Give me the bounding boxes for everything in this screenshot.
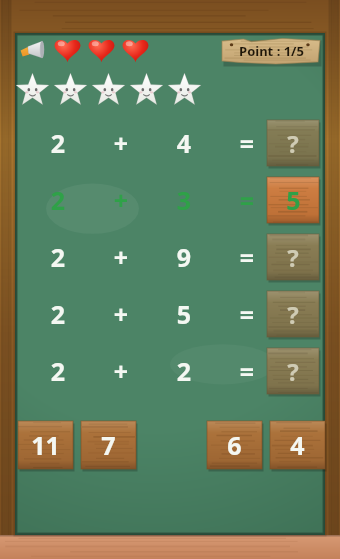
staticText: 2 <box>172 354 196 388</box>
button[interactable]: Sound <box>19 39 45 61</box>
staticText: = <box>235 183 259 217</box>
staticText: ? <box>287 298 299 331</box>
staticText: 2 <box>46 354 70 388</box>
button[interactable]: Choose 4 <box>270 421 325 469</box>
staticText: 7 <box>101 428 116 462</box>
staticText: 4 <box>172 126 196 160</box>
staticText: = <box>235 354 259 388</box>
staticText: + <box>109 354 133 388</box>
button[interactable]: Choose 7 <box>81 421 136 469</box>
button[interactable]: Drop answer here <box>267 291 319 337</box>
staticText: = <box>235 240 259 274</box>
staticText: 5 <box>172 297 196 331</box>
button[interactable]: Drop answer here <box>267 120 319 166</box>
staticText: 2 <box>46 297 70 331</box>
staticText: 6 <box>227 428 242 462</box>
staticText: ? <box>287 127 299 160</box>
staticText: + <box>109 240 133 274</box>
staticText: ? <box>287 355 299 388</box>
staticText: + <box>109 297 133 331</box>
staticText: 2 <box>46 240 70 274</box>
staticText: Point : 1/5 <box>239 42 304 60</box>
staticText: ? <box>287 241 299 274</box>
button[interactable]: Choose 11 <box>18 421 73 469</box>
staticText: = <box>235 126 259 160</box>
button[interactable]: Answer 5 <box>267 177 319 223</box>
staticText: 4 <box>290 428 305 462</box>
staticText: 5 <box>286 183 301 217</box>
button[interactable]: Choose 6 <box>207 421 262 469</box>
staticText: + <box>109 126 133 160</box>
staticText: 3 <box>172 183 196 217</box>
staticText: 9 <box>172 240 196 274</box>
staticText: 2 <box>46 126 70 160</box>
staticText: 11 <box>31 428 60 462</box>
button[interactable]: Drop answer here <box>267 234 319 280</box>
staticText: 2 <box>46 183 70 217</box>
staticText: = <box>235 297 259 331</box>
button[interactable]: Point : 1/5 <box>222 38 320 64</box>
button[interactable]: Drop answer here <box>267 348 319 394</box>
staticText: + <box>109 183 133 217</box>
